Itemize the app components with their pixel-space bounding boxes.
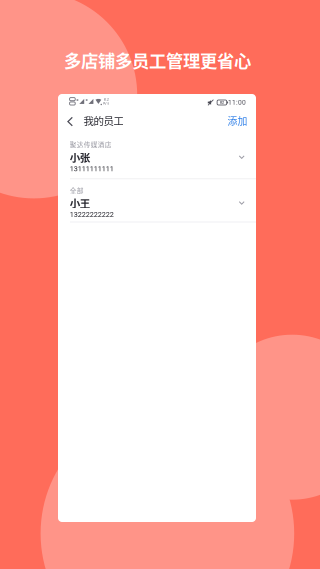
button[interactable]: 聚达传媒酒店 [58,135,256,178]
staticText: 82 [220,100,224,105]
staticText: 13222222222 [70,210,114,219]
staticText: 添加 [228,114,248,128]
staticText: 我的员工 [83,113,123,128]
staticText: 小王 [70,195,90,210]
staticText: 8.2 [104,97,109,102]
staticText: 聚达传媒酒店 [70,140,112,149]
staticText: 全部 [70,185,84,195]
button[interactable]: 添加 [220,108,256,133]
staticText: 多店铺多员工管理更省心 [64,47,251,72]
staticText: K/s [103,101,109,105]
button[interactable]: 全部 [58,181,256,224]
staticText: 11:00 [228,99,246,106]
button[interactable]: Back [58,109,130,135]
staticText: 小张 [70,149,90,165]
staticText: 13111111111 [70,165,114,173]
